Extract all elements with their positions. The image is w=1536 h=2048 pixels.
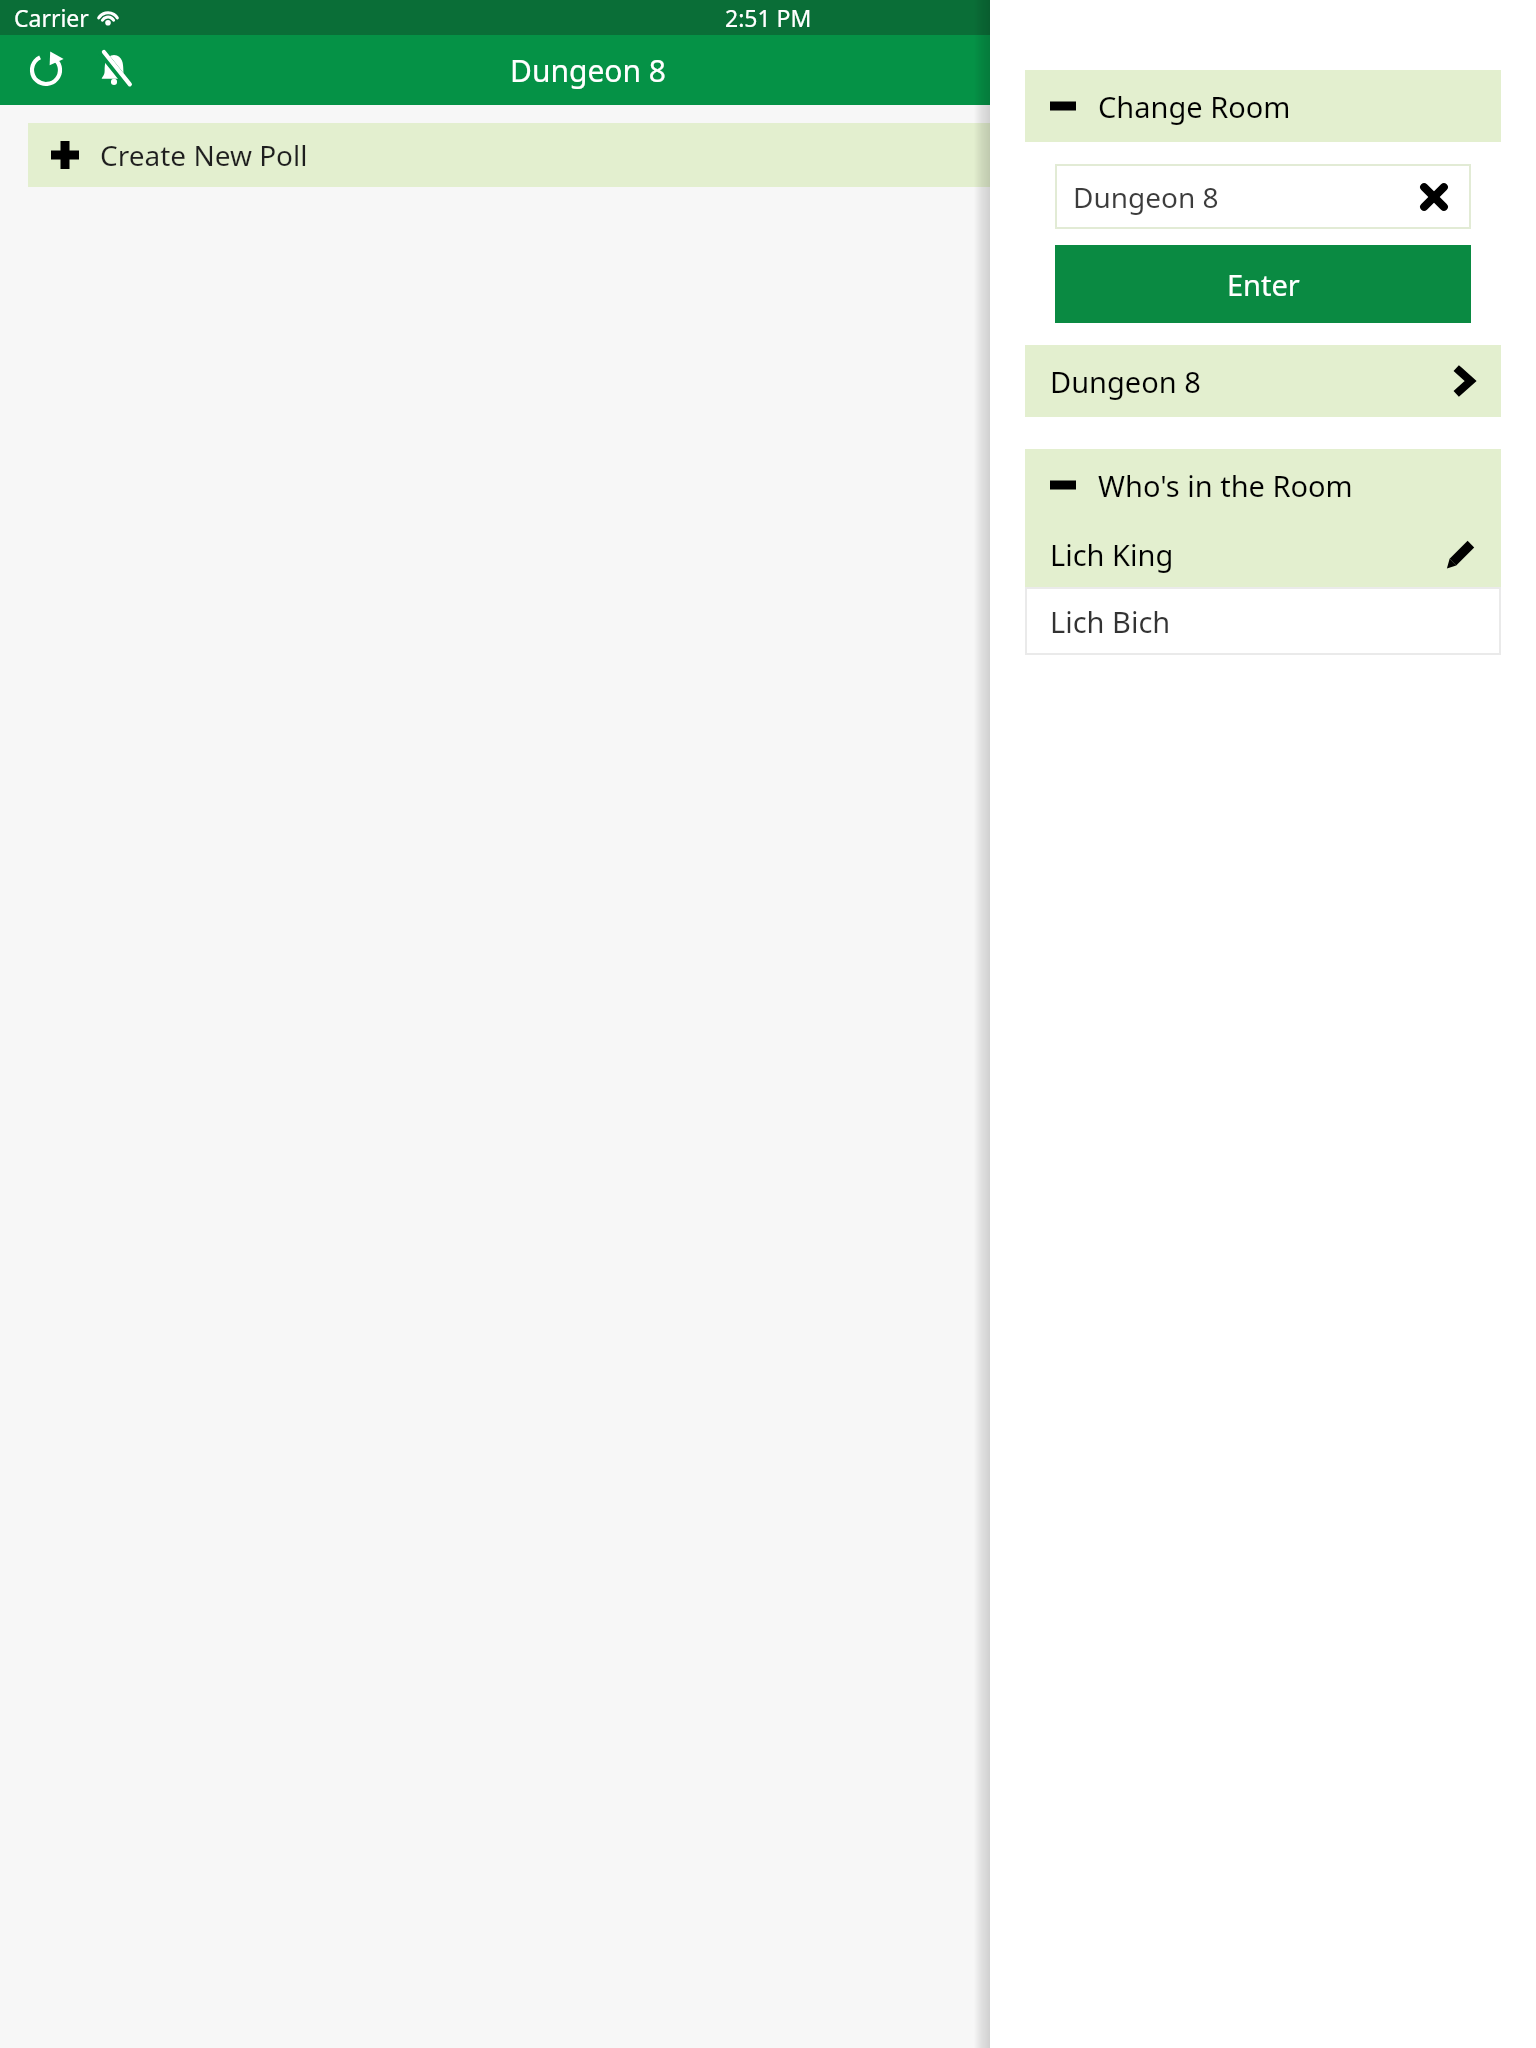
button[interactable]: Edit name: [1439, 532, 1483, 576]
button[interactable]: Change Room: [1025, 70, 1501, 142]
staticText: Change Room: [1098, 87, 1291, 126]
staticText: Carrier: [14, 2, 89, 33]
staticText: Enter: [1227, 265, 1300, 304]
button[interactable]: Enter: [1055, 245, 1471, 323]
button[interactable]: Refresh: [18, 42, 74, 98]
button[interactable]: Create New Poll: [28, 123, 1508, 187]
button[interactable]: Lich King: [1025, 521, 1501, 587]
staticText: 2:51 PM: [725, 2, 812, 33]
staticText: Lich King: [1050, 535, 1174, 574]
button[interactable]: Mute notifications: [86, 42, 142, 98]
staticText: Lich Bich: [1050, 602, 1171, 641]
button[interactable]: Lich Bich: [1025, 587, 1501, 655]
button[interactable]: Who's in the Room: [1025, 449, 1501, 521]
staticText: Dungeon 8: [1050, 362, 1201, 401]
button[interactable]: Dungeon 8: [1055, 164, 1471, 229]
staticText: Create New Poll: [100, 136, 308, 174]
staticText: Dungeon 8: [510, 50, 666, 91]
staticText: Dungeon 8: [1073, 178, 1219, 216]
staticText: Who's in the Room: [1098, 466, 1353, 505]
button[interactable]: Dungeon 8: [1025, 345, 1501, 417]
button[interactable]: Clear: [1409, 172, 1459, 222]
